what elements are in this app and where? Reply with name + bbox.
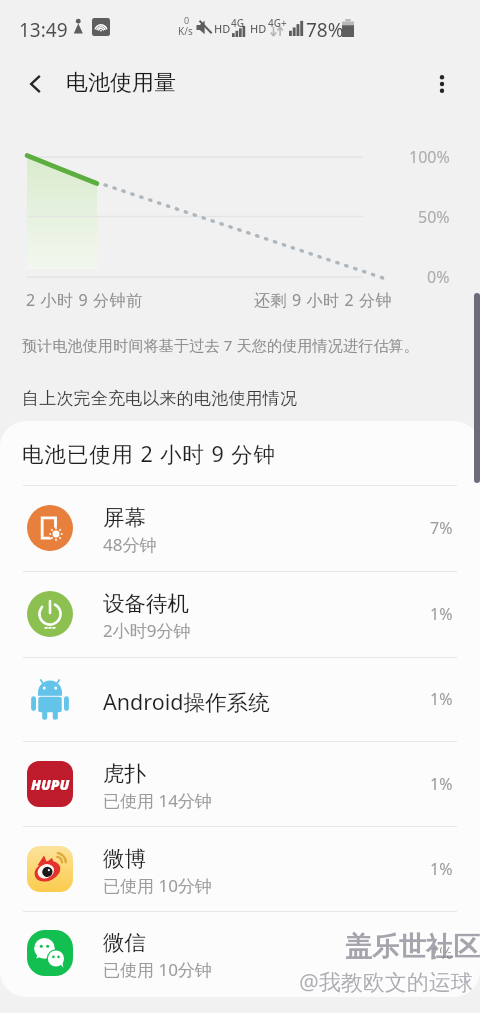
button[interactable]: Back xyxy=(12,60,60,108)
staticText: 1% xyxy=(430,773,453,795)
staticText: 2小时9分钟 xyxy=(103,619,191,642)
staticText: @我教欧文的运球 xyxy=(299,966,473,996)
staticText: 已使用 14分钟 xyxy=(103,789,212,812)
button[interactable]: 微博 xyxy=(0,826,480,911)
button[interactable]: HUPU xyxy=(0,741,480,826)
staticText: 盖乐世社区 xyxy=(345,930,480,964)
staticText: 已使用 10分钟 xyxy=(103,958,212,981)
staticText: 电池使用量 xyxy=(66,69,176,97)
staticText: @我教欧文的运球 xyxy=(298,965,472,995)
staticText: 4G+ xyxy=(268,16,287,30)
staticText: Android操作系统 xyxy=(103,687,270,716)
staticText: HD xyxy=(214,21,231,36)
button[interactable]: More options xyxy=(418,60,466,108)
staticText: 预计电池使用时间将基于过去 7 天您的使用情况进行估算。 xyxy=(22,335,419,355)
staticText: 0% xyxy=(427,266,450,288)
staticText: HD xyxy=(250,21,267,36)
staticText: 设备待机 xyxy=(103,590,189,617)
staticText: 自上次完全充电以来的电池使用情况 xyxy=(22,388,298,409)
button[interactable]: Android操作系统 xyxy=(0,657,480,741)
staticText: 屏幕 xyxy=(103,504,146,531)
staticText: 1% xyxy=(430,942,453,964)
staticText: 13:49 xyxy=(19,17,68,43)
staticText: 100% xyxy=(409,146,450,168)
button[interactable]: 微信 xyxy=(0,911,480,995)
staticText: 1% xyxy=(430,858,453,880)
staticText: 已使用 10分钟 xyxy=(103,874,212,897)
staticText: 盖乐世社区 xyxy=(344,928,479,962)
staticText: 4G xyxy=(231,16,244,30)
button[interactable]: 设备待机 xyxy=(0,571,480,657)
staticText: 50% xyxy=(418,206,450,228)
staticText: 1% xyxy=(430,688,453,710)
button[interactable]: 屏幕 xyxy=(0,485,480,571)
staticText: 48分钟 xyxy=(103,533,157,556)
staticText: 78% xyxy=(306,17,344,43)
staticText: 微博 xyxy=(103,845,146,872)
staticText: 虎扑 xyxy=(103,760,146,787)
staticText: 2 小时 9 分钟前 xyxy=(26,289,143,311)
staticText: 1% xyxy=(430,603,453,625)
staticText: K/s xyxy=(178,24,193,38)
staticText: 还剩 9 小时 2 分钟 xyxy=(254,289,393,311)
staticText: 微信 xyxy=(103,929,146,956)
staticText: 7% xyxy=(430,517,453,539)
staticText: 0 xyxy=(184,14,190,26)
staticText: HUPU xyxy=(31,775,70,794)
staticText: 电池已使用 2 小时 9 分钟 xyxy=(22,439,276,468)
